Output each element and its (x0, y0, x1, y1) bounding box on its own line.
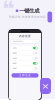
staticText: 语音朗读 (12, 57, 16, 59)
staticText: 智能配图 (12, 52, 16, 54)
staticText: 自动排版 (12, 47, 16, 49)
staticText: ❝ (2, 0, 15, 21)
staticText: 立即生成 (19, 74, 31, 77)
button[interactable]: Share (40, 78, 51, 94)
button[interactable]: 立即生成 (11, 73, 38, 78)
staticText: 请输入要生成的关键词 (13, 40, 23, 42)
staticText: 自动保存 (12, 68, 16, 69)
button[interactable]: Open panel (47, 11, 52, 22)
staticText: 夜间模式 (12, 62, 16, 64)
staticText: 一键生成 (19, 7, 39, 14)
staticText: 内容设置 (19, 35, 31, 38)
staticText: 智能识别 快速整理你的内容 (9, 15, 46, 18)
